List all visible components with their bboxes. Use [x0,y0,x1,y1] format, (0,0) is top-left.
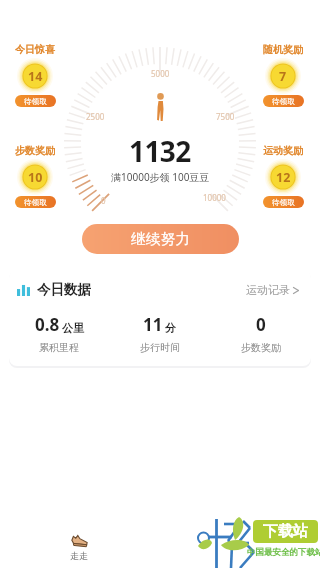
staticText: 分 [165,321,176,335]
staticText: 7500 [216,111,235,122]
button[interactable]: 继续努力 [82,224,239,254]
staticText: 0 [101,195,106,206]
staticText: 待领取 [272,97,295,106]
staticText: 累积里程 [39,341,79,354]
staticText: 14 [28,68,43,85]
staticText: 待领取 [24,198,47,207]
staticText: 运动记录 [246,283,290,297]
staticText: 0 [256,313,266,336]
staticText: 中国最安全的下载站 [247,547,320,558]
staticText: 今日数据 [37,281,91,298]
staticText: 走走 [70,550,88,561]
staticText: 11 [143,313,163,336]
staticText: 1132 [129,132,191,170]
staticText: 公里 [62,321,84,335]
staticText: 7 [279,68,287,85]
staticText: 下载站 [263,522,308,541]
staticText: 继续努力 [131,230,191,249]
staticText: 随机奖励 [263,43,303,56]
staticText: 12 [276,169,291,186]
button[interactable]: 走走 [57,534,101,561]
staticText: 10 [28,169,43,186]
staticText: 今日惊喜 [15,43,55,56]
staticText: 步数奖励 [241,341,281,354]
staticText: 运动奖励 [263,144,303,157]
button[interactable]: 今日惊喜 [14,43,56,107]
button[interactable]: 步数奖励 [14,144,56,208]
staticText: 步行时间 [140,341,180,354]
staticText: 满10000步领 100豆豆 [111,170,210,184]
staticText: 5000 [151,68,170,79]
staticText: 步数奖励 [15,144,55,157]
button[interactable]: 随机奖励 [262,43,304,107]
staticText: 待领取 [272,198,295,207]
button[interactable]: 运动记录 [246,283,299,297]
staticText: 10000 [203,192,226,203]
staticText: 待领取 [24,97,47,106]
staticText: 0.8 [35,313,60,336]
staticText: 2500 [86,111,105,122]
button[interactable]: 运动奖励 [262,144,304,208]
